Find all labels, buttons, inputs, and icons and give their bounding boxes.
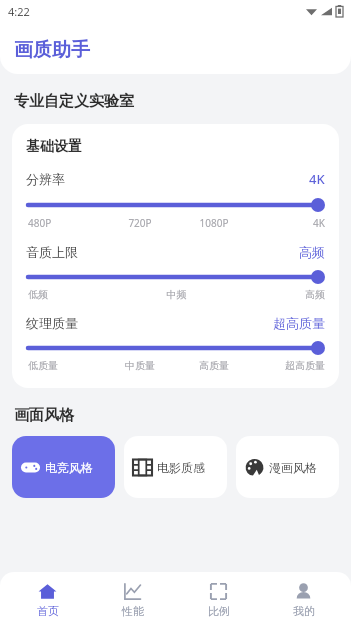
staticText: 中频 [127, 288, 226, 301]
button[interactable]: 漫画风格 [236, 436, 339, 498]
staticText: 4K [309, 170, 325, 188]
staticText: 画质助手 [14, 38, 90, 62]
staticText: 1080P [177, 216, 251, 230]
staticText: 画面风格 [14, 406, 74, 425]
staticText: 性能 [122, 604, 144, 618]
button[interactable] [26, 340, 325, 356]
staticText: 中质量 [103, 359, 177, 372]
staticText: 专业自定义实验室 [14, 92, 134, 111]
staticText: 比例 [208, 604, 230, 618]
staticText: 高频 [226, 288, 325, 301]
staticText: 首页 [37, 604, 59, 618]
staticText: 音质上限 [26, 244, 78, 260]
staticText: 低频 [28, 288, 127, 301]
staticText: 我的 [293, 604, 315, 618]
staticText: 电竞风格 [45, 460, 93, 475]
staticText: 超高质量 [251, 359, 325, 372]
button[interactable] [26, 197, 325, 213]
staticText: 分辨率 [26, 171, 65, 187]
staticText: 基础设置 [26, 138, 82, 156]
staticText: 低质量 [28, 359, 103, 372]
staticText: 480P [28, 216, 103, 230]
staticText: 漫画风格 [269, 460, 317, 475]
staticText: 高质量 [177, 359, 251, 372]
button[interactable]: 性能 [95, 580, 170, 620]
button[interactable]: 电影质感 [124, 436, 227, 498]
button[interactable]: 电竞风格 [12, 436, 115, 498]
staticText: 电影质感 [157, 460, 205, 475]
staticText: 超高质量 [273, 315, 325, 331]
button[interactable]: 我的 [266, 580, 341, 620]
button[interactable]: 首页 [10, 580, 85, 620]
staticText: 720P [103, 216, 177, 230]
staticText: 高频 [299, 244, 325, 260]
button[interactable] [26, 269, 325, 285]
button[interactable]: 比例 [181, 580, 256, 620]
staticText: 4K [251, 216, 325, 230]
staticText: 4:22 [8, 4, 30, 19]
staticText: 纹理质量 [26, 315, 78, 331]
